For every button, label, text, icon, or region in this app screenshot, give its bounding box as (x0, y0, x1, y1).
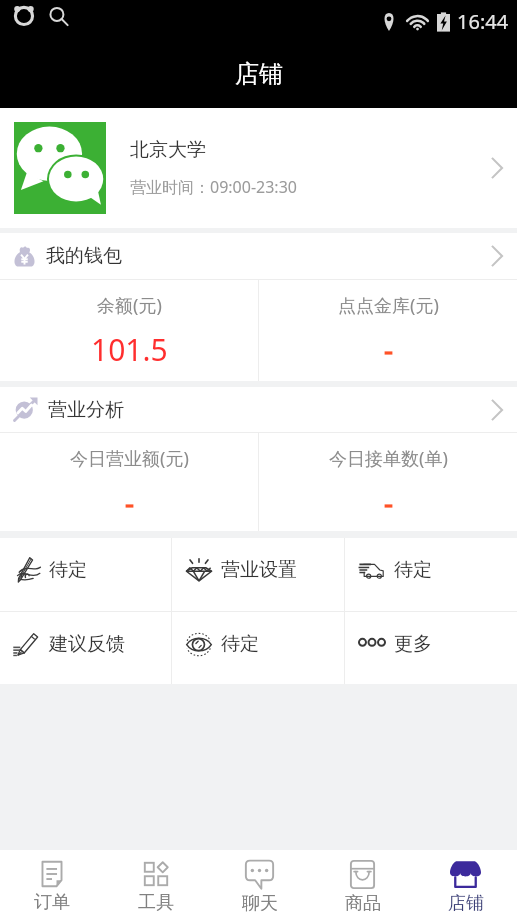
button[interactable]: 商品 (311, 850, 414, 920)
button[interactable]: 待定 (345, 538, 517, 611)
staticText: 聊天 (242, 892, 278, 915)
staticText: 点点金库(元) (338, 293, 439, 318)
button[interactable]: 点点金库(元) (259, 280, 517, 381)
staticText: 营业时间：09:00-23:30 (130, 176, 297, 198)
other: Open (490, 399, 504, 421)
staticText: 16:44 (457, 8, 509, 35)
button[interactable]: 订单 (0, 850, 104, 920)
staticText: 营业设置 (221, 558, 297, 582)
button[interactable]: 北京大学 (0, 108, 517, 228)
staticText: 店铺 (448, 892, 484, 915)
staticText: 待定 (49, 558, 87, 582)
button[interactable]: 今日接单数(单) (259, 433, 517, 531)
button[interactable]: 更多 (345, 612, 517, 684)
staticText: 店铺 (235, 59, 283, 89)
staticText: 待定 (394, 558, 432, 582)
staticText: 订单 (34, 891, 70, 914)
button[interactable]: 待定 (172, 612, 344, 684)
staticText: 建议反馈 (49, 632, 125, 656)
other: Open (490, 245, 504, 267)
button[interactable]: 工具 (104, 850, 208, 920)
button[interactable]: 建议反馈 (0, 612, 171, 684)
staticText: 今日营业额(元) (70, 446, 189, 471)
staticText: 余额(元) (97, 293, 162, 318)
button[interactable]: 待定 (0, 538, 171, 611)
staticText: 待定 (221, 632, 259, 656)
button[interactable]: 店铺 (414, 850, 517, 920)
button[interactable]: 今日营业额(元) (0, 433, 258, 531)
staticText: 今日接单数(单) (329, 446, 448, 471)
button[interactable]: 营业分析 (0, 387, 517, 432)
staticText: 北京大学 (130, 138, 206, 162)
button[interactable]: 我的钱包 (0, 233, 517, 279)
button[interactable]: 余额(元) (0, 280, 258, 381)
staticText: 工具 (138, 891, 174, 914)
button[interactable]: 聊天 (208, 850, 311, 920)
button[interactable]: 营业设置 (172, 538, 344, 611)
staticText: 商品 (345, 892, 381, 915)
staticText: 营业分析 (48, 398, 124, 422)
staticText: 更多 (394, 632, 432, 656)
staticText: 101.5 (91, 329, 168, 370)
staticText: 我的钱包 (46, 244, 122, 268)
other: Open (490, 157, 504, 179)
